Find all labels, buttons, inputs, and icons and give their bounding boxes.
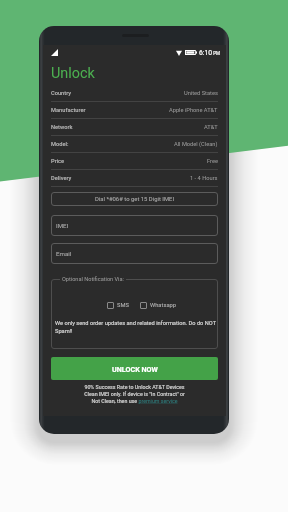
button[interactable]: Network [51, 119, 218, 136]
staticText: 90% Success Rate to Unlock AT&T Devices … [51, 384, 218, 404]
staticText: All Model (Clean) [174, 141, 218, 148]
staticText: Delivery [51, 175, 72, 182]
button[interactable]: Whatsapp [140, 302, 177, 309]
button[interactable]: Price [51, 153, 218, 170]
staticText: United States [184, 90, 218, 97]
staticText: IMEI [56, 222, 69, 229]
button[interactable]: Email [51, 243, 218, 264]
staticText: Optional Notification Via: [62, 276, 124, 283]
staticText: Price [51, 158, 65, 165]
other: Battery [185, 50, 197, 55]
button[interactable]: Dial *#06# to get 15 Digit IMEI [51, 192, 218, 206]
button[interactable]: UNLOCK NOW [51, 357, 218, 380]
staticText: UNLOCK NOW [112, 365, 158, 373]
button[interactable]: Country [51, 85, 218, 102]
button[interactable]: SMS [107, 302, 129, 309]
staticText: 6:10 [199, 49, 213, 57]
other: Signal strength [51, 49, 58, 56]
staticText: Manufacturer [51, 107, 86, 114]
button[interactable]: IMEI [51, 215, 218, 236]
staticText: Dial *#06# to get 15 Digit IMEI [95, 196, 174, 203]
staticText: Whatsapp [150, 302, 177, 309]
staticText: Model: [51, 141, 69, 148]
staticText: AT&T [204, 124, 218, 131]
staticText: Country [51, 90, 71, 97]
button[interactable]: Model: [51, 136, 218, 153]
other: Wi-Fi [176, 50, 182, 56]
staticText: PM [212, 51, 221, 56]
staticText: Free [207, 158, 218, 165]
staticText: 1 - 4 Hours [190, 175, 218, 182]
staticText: Apple iPhone AT&T [169, 107, 218, 114]
staticText: Network [51, 124, 73, 131]
staticText: We only send order updates and related i… [55, 320, 217, 335]
button[interactable]: Delivery [51, 170, 218, 187]
staticText: Unlock [51, 65, 95, 82]
button[interactable]: Manufacturer [51, 102, 218, 119]
staticText: SMS [117, 302, 129, 309]
staticText: Email [56, 250, 72, 257]
